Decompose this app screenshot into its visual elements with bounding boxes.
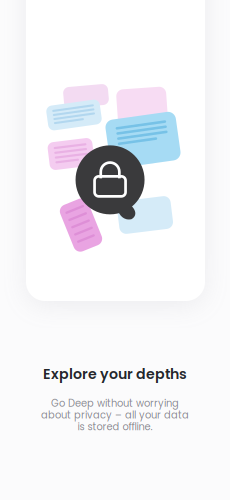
staticText: Go Deep without worrying	[51, 396, 179, 410]
staticText: is stored offline.	[77, 420, 152, 434]
staticText: about privacy – all your data	[41, 408, 189, 422]
staticText: Explore your depths	[43, 364, 187, 384]
